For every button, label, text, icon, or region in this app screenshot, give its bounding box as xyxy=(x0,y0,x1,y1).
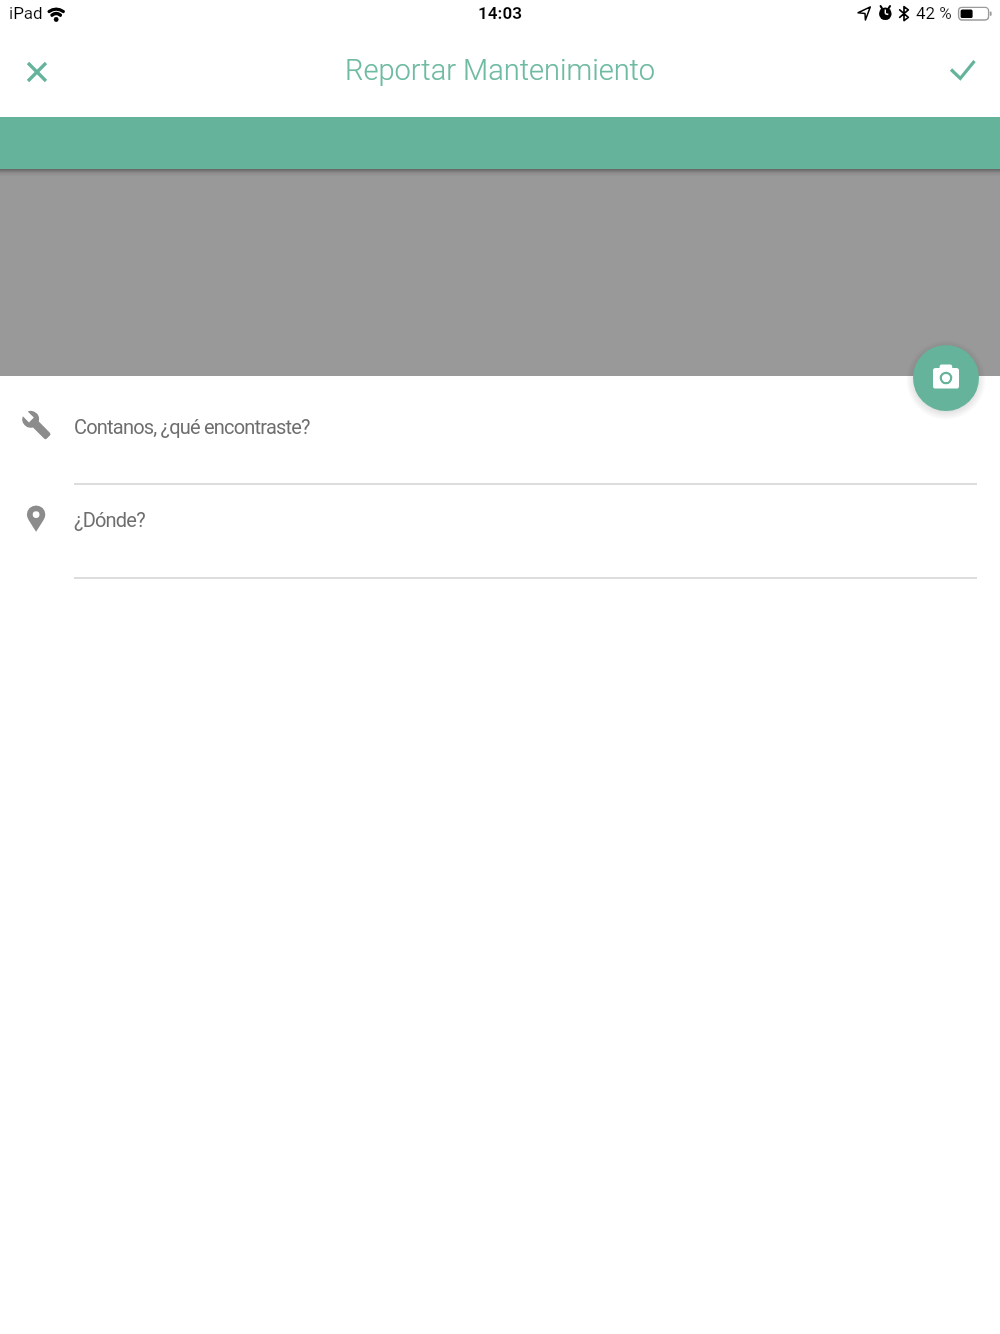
button[interactable] xyxy=(913,345,979,411)
staticText: 14:03 xyxy=(0,3,1000,23)
staticText: 42 % xyxy=(916,3,952,23)
button[interactable] xyxy=(939,48,987,96)
button[interactable]: Contanos, ¿qué encontraste? xyxy=(0,400,1000,452)
button[interactable]: ¿Dónde? xyxy=(0,493,1000,545)
button[interactable] xyxy=(13,48,61,96)
staticText: ¿Dónde? xyxy=(74,508,145,531)
staticText: Contanos, ¿qué encontraste? xyxy=(74,415,310,438)
staticText: iPad xyxy=(9,3,43,23)
staticText: Reportar Mantenimiento xyxy=(0,53,1000,87)
